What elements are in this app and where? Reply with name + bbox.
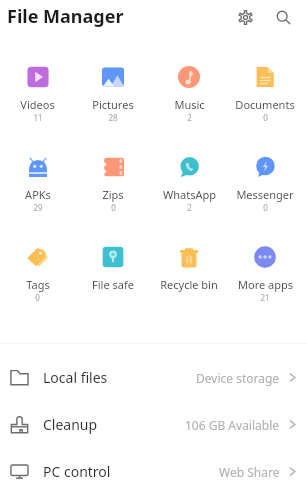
staticText: WhatsApp [163,187,216,202]
staticText: PC control [43,462,111,481]
staticText: Videos [20,97,55,112]
staticText: 0 [263,202,268,213]
button[interactable]: Recycle bin [151,235,227,325]
staticText: Cleanup [43,415,98,434]
staticText: 0 [111,202,116,213]
staticText: Music [174,97,205,112]
staticText: 28 [108,112,118,123]
button[interactable]: File safe [75,235,151,325]
button[interactable]: WhatsApp [151,145,227,235]
button[interactable]: PC control [0,448,307,495]
staticText: Zips [102,187,124,202]
button[interactable]: Music [151,55,227,145]
staticText: File safe [92,277,134,292]
button[interactable]: Settings [231,3,259,31]
staticText: Web Share [219,464,280,480]
button[interactable]: More apps [227,235,303,325]
staticText: 21 [260,292,270,303]
button[interactable]: Pictures [75,55,151,145]
button[interactable]: APKs [0,145,75,235]
staticText: Messenger [236,187,294,202]
staticText: File Manager [7,4,124,29]
staticText: 2 [187,112,192,123]
button[interactable]: Documents [227,55,303,145]
staticText: APKs [25,187,51,202]
staticText: Recycle bin [160,277,218,292]
staticText: 11 [33,112,43,123]
staticText: 29 [33,202,43,213]
staticText: Pictures [92,97,134,112]
staticText: 0 [263,112,268,123]
staticText: 0 [35,292,40,303]
staticText: More apps [238,277,293,292]
staticText: Tags [26,277,50,292]
staticText: 2 [187,202,192,213]
staticText: Local files [43,368,108,387]
staticText: 106 GB Available [185,417,280,433]
button[interactable]: Search [269,3,297,31]
button[interactable]: Local files [0,354,307,401]
button[interactable]: Tags [0,235,75,325]
button[interactable]: Zips [75,145,151,235]
staticText: Device storage [196,370,280,386]
button[interactable]: Messenger [227,145,303,235]
button[interactable]: Cleanup [0,401,307,448]
button[interactable]: Videos [0,55,75,145]
staticText: Documents [235,97,295,112]
